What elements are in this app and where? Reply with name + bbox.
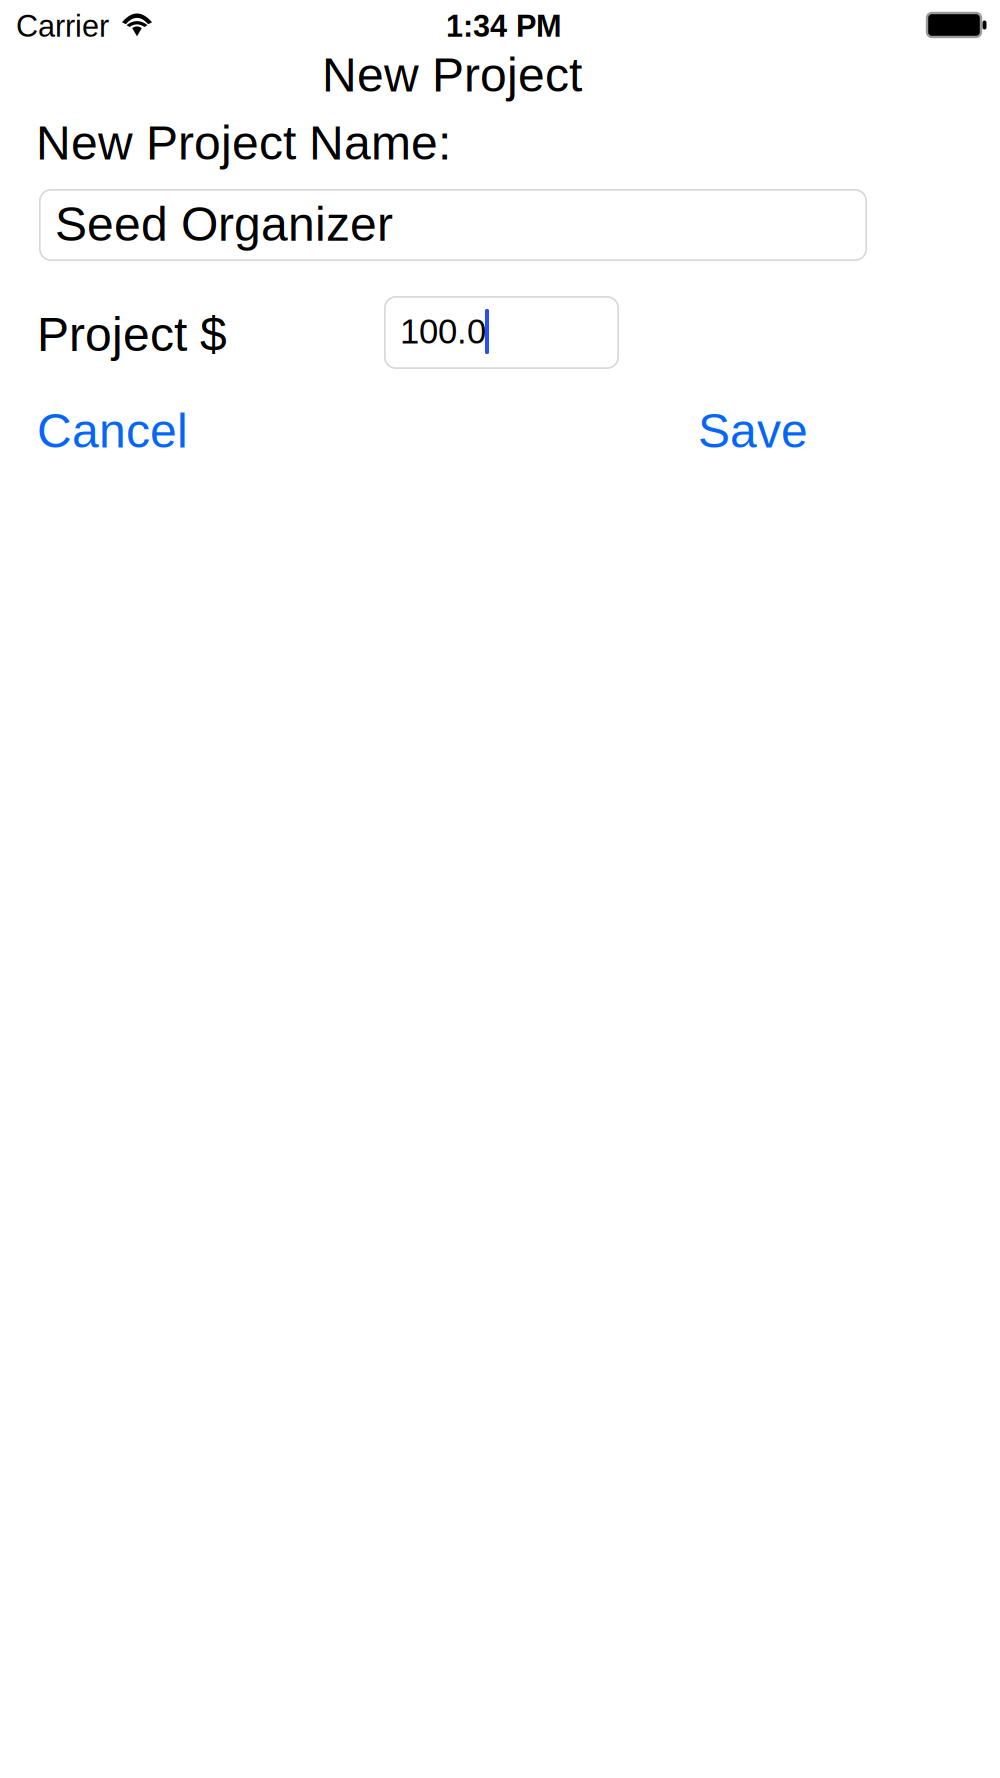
staticText: Seed Organizer <box>55 197 393 251</box>
staticText: 1:34 PM <box>446 9 562 43</box>
staticText: New Project Name: <box>36 116 451 170</box>
button[interactable]: Project dollar amount <box>384 296 619 369</box>
staticText: New Project <box>322 48 582 102</box>
button[interactable]: New project name <box>39 189 867 261</box>
staticText: Save <box>698 404 808 458</box>
staticText: Cancel <box>37 404 188 458</box>
button[interactable]: Save <box>698 404 808 450</box>
staticText: 100.0 <box>400 312 486 351</box>
staticText: Project $ <box>37 307 227 361</box>
button[interactable]: Cancel <box>0 404 188 450</box>
staticText: Carrier <box>16 9 109 43</box>
